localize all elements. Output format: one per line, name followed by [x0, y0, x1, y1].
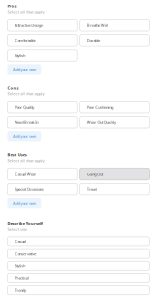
staticText: Stylish: [15, 53, 25, 58]
button[interactable]: Conservative: [7, 249, 149, 258]
button[interactable]: Special Occasions: [7, 183, 77, 195]
staticText: Special Occasions: [15, 186, 44, 192]
staticText: Going Out: [87, 171, 103, 177]
staticText: Attractive Design: [15, 23, 43, 28]
staticText: Cons: [7, 85, 18, 90]
staticText: Describe Yourself: [7, 221, 43, 226]
staticText: Breathe Well: [87, 23, 108, 28]
staticText: Add your own: [13, 67, 36, 72]
staticText: Stylish: [15, 263, 25, 268]
staticText: Poor Cushioning: [87, 104, 113, 110]
staticText: Durable: [87, 38, 100, 43]
button[interactable]: Attractive Design: [7, 19, 77, 31]
staticText: Add your own: [13, 134, 36, 139]
button[interactable]: Trendy: [7, 286, 149, 295]
button[interactable]: Durable: [80, 35, 149, 46]
staticText: Trendy: [15, 287, 26, 293]
staticText: Poor Quality: [15, 104, 34, 110]
button[interactable]: Casual Wear: [7, 168, 77, 180]
button[interactable]: Poor Cushioning: [80, 101, 149, 113]
staticText: Pros: [7, 3, 16, 9]
staticText: Comfortable: [15, 38, 35, 43]
staticText: Select all that apply: [7, 158, 44, 163]
button[interactable]: Stylish: [7, 261, 149, 270]
button[interactable]: Breathe Well: [80, 19, 149, 31]
staticText: Practical: [15, 275, 29, 281]
button[interactable]: Casual: [7, 237, 149, 246]
button[interactable]: Stylish: [7, 50, 77, 61]
staticText: Select one: [7, 227, 27, 232]
staticText: Select all that apply: [7, 9, 44, 14]
button[interactable]: Add your own: [7, 64, 41, 75]
button[interactable]: Travel: [80, 183, 149, 195]
staticText: Conservative: [15, 251, 36, 256]
button[interactable]: Add your own: [7, 131, 41, 141]
staticText: Travel: [87, 186, 97, 192]
staticText: Casual: [15, 239, 26, 244]
button[interactable]: Wear Out Quickly: [80, 116, 149, 128]
staticText: Select all that apply: [7, 91, 44, 96]
staticText: Best Uses: [7, 152, 27, 157]
staticText: Need Break In: [15, 120, 38, 125]
button[interactable]: Poor Quality: [7, 101, 77, 113]
staticText: Casual Wear: [15, 171, 36, 177]
button[interactable]: Need Break In: [7, 116, 77, 128]
button[interactable]: Comfortable: [7, 35, 77, 46]
staticText: Wear Out Quickly: [87, 120, 116, 125]
button[interactable]: Practical: [7, 273, 149, 282]
staticText: Add your own: [13, 200, 36, 206]
button[interactable]: Going Out: [80, 168, 149, 180]
button[interactable]: Add your own: [7, 198, 41, 208]
